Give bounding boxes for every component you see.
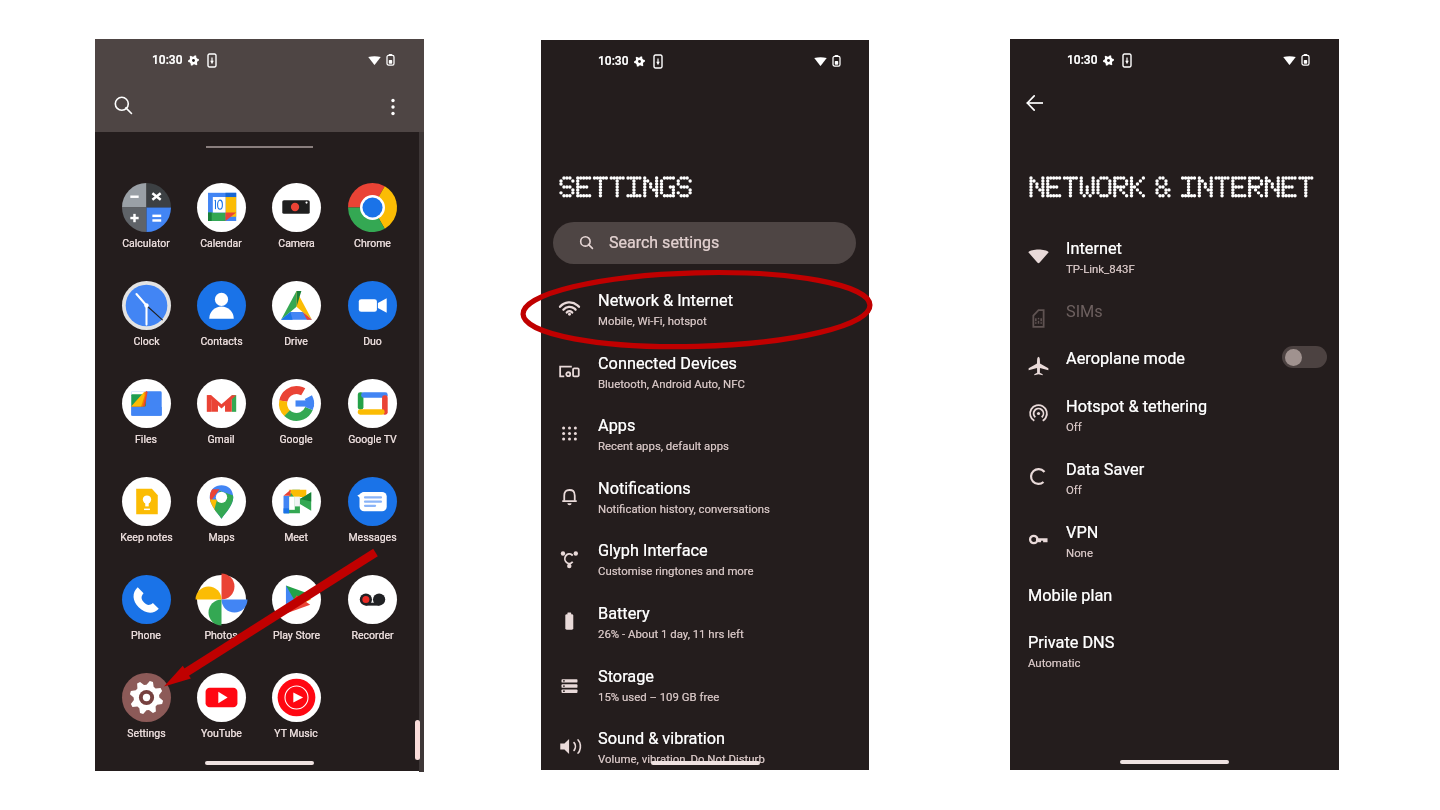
button[interactable]: Back bbox=[1015, 83, 1055, 123]
staticText: Mobile plan bbox=[1028, 586, 1113, 605]
staticText: Apps bbox=[598, 416, 636, 435]
staticText: Camera bbox=[278, 237, 315, 249]
button[interactable]: Gmail bbox=[183, 379, 259, 451]
staticText: Notifications bbox=[598, 479, 691, 498]
staticText: YT Music bbox=[274, 727, 318, 739]
staticText: Hotspot & tethering bbox=[1066, 397, 1208, 416]
staticText: Off bbox=[1066, 420, 1082, 433]
staticText: YouTube bbox=[201, 727, 242, 739]
staticText: Bluetooth, Android Auto, NFC bbox=[598, 377, 745, 390]
button[interactable]: Calculator bbox=[108, 183, 184, 255]
button[interactable]: Private DNS bbox=[1010, 633, 1339, 693]
button[interactable]: Play Store bbox=[258, 575, 334, 647]
staticText: Glyph Interface bbox=[598, 541, 708, 560]
button[interactable]: More options bbox=[380, 94, 406, 120]
button[interactable]: Duo bbox=[334, 281, 410, 353]
staticText: Private DNS bbox=[1028, 633, 1115, 652]
staticText: 10:30 bbox=[1067, 53, 1098, 67]
button[interactable]: Storage bbox=[541, 667, 869, 727]
staticText: VPN bbox=[1066, 523, 1099, 542]
staticText: Search settings bbox=[609, 233, 720, 252]
staticText: Volume, vibration, Do Not Disturb bbox=[598, 752, 765, 765]
button[interactable]: Mobile plan bbox=[1010, 586, 1339, 631]
staticText: Customise ringtones and more bbox=[598, 564, 754, 577]
staticText: Storage bbox=[598, 667, 655, 686]
staticText: Contacts bbox=[200, 335, 243, 347]
button[interactable]: Clock bbox=[108, 281, 184, 353]
button[interactable]: Data Saver bbox=[1010, 460, 1339, 520]
staticText: Chrome bbox=[354, 237, 391, 249]
button[interactable]: Recorder bbox=[334, 575, 410, 647]
staticText: Google bbox=[279, 433, 313, 445]
staticText: Gmail bbox=[207, 433, 235, 445]
staticText: Connected Devices bbox=[598, 354, 737, 373]
staticText: None bbox=[1066, 546, 1093, 559]
staticText: Keep notes bbox=[120, 531, 173, 543]
button[interactable]: Camera bbox=[258, 183, 334, 255]
button[interactable]: Phone bbox=[108, 575, 184, 647]
staticText: Network & Internet bbox=[598, 291, 734, 310]
staticText: Battery bbox=[598, 604, 650, 623]
button[interactable]: Battery bbox=[541, 604, 869, 664]
button[interactable]: Google bbox=[258, 379, 334, 451]
staticText: Phone bbox=[131, 629, 161, 641]
button[interactable]: Aeroplane mode toggle bbox=[1282, 346, 1327, 368]
button[interactable]: Meet bbox=[258, 477, 334, 549]
staticText: Photos bbox=[204, 629, 238, 641]
button[interactable]: Files bbox=[108, 379, 184, 451]
staticText: Files bbox=[135, 433, 157, 445]
button[interactable]: Chrome bbox=[334, 183, 410, 255]
staticText: Drive bbox=[284, 335, 308, 347]
button[interactable]: Contacts bbox=[183, 281, 259, 353]
button[interactable]: Aeroplane mode bbox=[1010, 349, 1339, 394]
staticText: Mobile, Wi-Fi, hotspot bbox=[598, 314, 707, 327]
staticText: Notification history, conversations bbox=[598, 502, 770, 515]
button[interactable]: Drive bbox=[258, 281, 334, 353]
button[interactable]: Search settings bbox=[553, 222, 856, 264]
button[interactable]: SIMs bbox=[1010, 302, 1339, 347]
button[interactable]: Hotspot & tethering bbox=[1010, 397, 1339, 457]
button[interactable]: YouTube bbox=[183, 673, 259, 745]
button[interactable]: Messages bbox=[334, 477, 410, 549]
staticText: 10:30 bbox=[598, 54, 629, 68]
button[interactable]: Settings bbox=[108, 673, 184, 745]
button[interactable]: VPN bbox=[1010, 523, 1339, 583]
staticText: 26% - About 1 day, 11 hrs left bbox=[598, 627, 744, 640]
button[interactable]: Calendar bbox=[183, 183, 259, 255]
staticText: Aeroplane mode bbox=[1066, 349, 1186, 368]
staticText: Internet bbox=[1066, 239, 1122, 258]
button[interactable]: Apps bbox=[541, 416, 869, 476]
staticText: Play Store bbox=[273, 629, 320, 641]
staticText: TP-Link_843F bbox=[1066, 262, 1135, 275]
button[interactable]: Connected Devices bbox=[541, 354, 869, 414]
staticText: Recorder bbox=[351, 629, 394, 641]
button[interactable]: Search apps bbox=[113, 95, 135, 117]
staticText: SIMs bbox=[1066, 302, 1103, 321]
button[interactable]: Glyph Interface bbox=[541, 541, 869, 601]
staticText: Recent apps, default apps bbox=[598, 439, 729, 452]
staticText: Automatic bbox=[1028, 656, 1081, 669]
staticText: Duo bbox=[363, 335, 382, 347]
button[interactable]: Keep notes bbox=[108, 477, 184, 549]
staticText: Clock bbox=[133, 335, 160, 347]
button[interactable]: Notifications bbox=[541, 479, 869, 539]
staticText: Maps bbox=[208, 531, 235, 543]
staticText: Google TV bbox=[348, 433, 397, 445]
staticText: Sound & vibration bbox=[598, 729, 726, 748]
staticText: Calculator bbox=[122, 237, 170, 249]
button[interactable]: Sound & vibration bbox=[541, 729, 869, 789]
button[interactable]: Network & Internet bbox=[541, 291, 869, 351]
staticText: 15% used – 109 GB free bbox=[598, 690, 720, 703]
button[interactable]: Maps bbox=[183, 477, 259, 549]
staticText: Data Saver bbox=[1066, 460, 1145, 479]
staticText: Meet bbox=[284, 531, 308, 543]
button[interactable]: Internet bbox=[1010, 239, 1339, 299]
button[interactable]: YT Music bbox=[258, 673, 334, 745]
staticText: Settings bbox=[127, 727, 166, 739]
staticText: Calendar bbox=[200, 237, 242, 249]
button[interactable]: Photos bbox=[183, 575, 259, 647]
staticText: 10:30 bbox=[152, 53, 183, 67]
staticText: Messages bbox=[348, 531, 397, 543]
button[interactable]: Google TV bbox=[334, 379, 410, 451]
staticText: Off bbox=[1066, 483, 1082, 496]
